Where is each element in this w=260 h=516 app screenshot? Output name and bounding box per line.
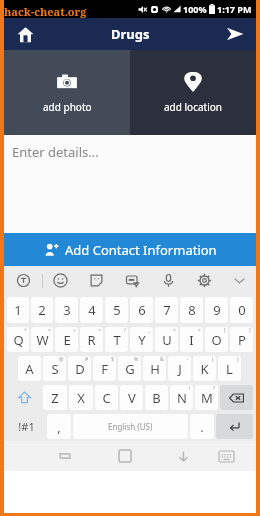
staticText: R — [87, 331, 96, 349]
button[interactable]: Y — [130, 327, 153, 352]
button[interactable]: Collapse — [222, 266, 256, 295]
staticText: Z — [51, 389, 59, 407]
staticText: / — [124, 327, 126, 334]
staticText: Y — [138, 331, 146, 349]
staticText: W — [36, 331, 49, 349]
button[interactable]: Translate — [4, 266, 42, 295]
staticText: P — [238, 331, 246, 349]
button[interactable]: 0 — [230, 297, 253, 323]
button[interactable]: Enter — [216, 414, 253, 439]
staticText: H — [150, 360, 160, 378]
button[interactable]: 5 — [105, 297, 128, 323]
button[interactable]: E — [55, 327, 78, 352]
staticText: T — [113, 331, 121, 349]
staticText: & — [160, 356, 164, 363]
staticText: 3 — [63, 301, 71, 319]
staticText: ] — [249, 327, 251, 334]
staticText: 6 — [138, 301, 146, 319]
button[interactable]: 6 — [130, 297, 153, 323]
staticText: 7 — [163, 301, 171, 319]
button[interactable]: T — [105, 327, 128, 352]
staticText: ? — [213, 385, 216, 392]
button[interactable]: R — [80, 327, 103, 352]
staticText: 9 — [213, 301, 221, 319]
button[interactable]: 2 — [31, 297, 53, 323]
button[interactable]: add photo — [4, 50, 130, 135]
staticText: ( — [212, 356, 214, 363]
button[interactable]: Recents — [46, 441, 84, 471]
staticText: 1 — [14, 301, 22, 319]
button[interactable]: F — [93, 356, 116, 381]
staticText: 2 — [38, 301, 46, 319]
button[interactable]: Q — [7, 327, 29, 352]
staticText: Drugs — [111, 25, 150, 43]
button[interactable]: add location — [130, 50, 256, 135]
button[interactable]: 4 — [80, 297, 103, 323]
button[interactable]: 1 — [7, 297, 29, 323]
staticText: - — [187, 356, 189, 363]
button[interactable]: G — [118, 356, 141, 381]
button[interactable]: U — [155, 327, 178, 352]
button[interactable]: L — [218, 356, 241, 381]
button[interactable]: GIF — [114, 266, 150, 295]
button[interactable]: Voice input — [150, 266, 186, 295]
button[interactable]: 9 — [205, 297, 228, 323]
button[interactable]: Backspace — [220, 385, 253, 410]
button[interactable]: Enter details... — [4, 135, 256, 233]
button[interactable]: D — [68, 356, 91, 381]
button[interactable]: English (US) — [73, 414, 188, 439]
staticText: C — [102, 389, 111, 407]
button[interactable]: W — [31, 327, 53, 352]
button[interactable]: K — [193, 356, 216, 381]
staticText: M — [201, 389, 213, 407]
button[interactable]: Home — [106, 441, 143, 471]
button[interactable]: S — [43, 356, 66, 381]
button[interactable]: 3 — [55, 297, 78, 323]
staticText: + — [24, 327, 27, 334]
button[interactable]: I — [180, 327, 203, 352]
button[interactable]: 7 — [155, 297, 178, 323]
button[interactable]: Shift — [7, 385, 41, 410]
staticText: Add Contact Information — [65, 241, 217, 259]
button[interactable]: N — [170, 385, 193, 410]
button[interactable]: B — [145, 385, 168, 410]
staticText: [ — [224, 327, 226, 334]
staticText: 0 — [238, 301, 246, 319]
button[interactable]: A — [18, 356, 41, 381]
button[interactable]: X — [69, 385, 93, 410]
button[interactable]: P — [230, 327, 253, 352]
button[interactable]: Z — [43, 385, 67, 410]
button[interactable]: Send — [222, 21, 248, 47]
button[interactable]: Home — [12, 21, 38, 47]
staticText: . — [200, 418, 204, 436]
button[interactable]: . — [190, 414, 214, 439]
button[interactable]: Emoji — [43, 266, 78, 295]
staticText: N — [177, 389, 187, 407]
staticText: × — [48, 327, 51, 334]
staticText: # — [85, 356, 89, 363]
staticText: V — [128, 389, 136, 407]
button[interactable]: V — [120, 385, 143, 410]
staticText: ) — [237, 356, 239, 363]
staticText: Enter details... — [12, 143, 99, 161]
button[interactable]: M — [195, 385, 218, 410]
staticText: X — [77, 389, 85, 407]
staticText: 1:17 PM — [217, 3, 252, 15]
staticText: Q — [13, 331, 24, 349]
staticText: 4 — [88, 301, 96, 319]
button[interactable]: C — [95, 385, 118, 410]
button[interactable]: J — [168, 356, 191, 381]
staticText: E — [63, 331, 71, 349]
button[interactable]: Settings — [186, 266, 222, 295]
button[interactable]: Stickers — [78, 266, 114, 295]
button[interactable]: O — [205, 327, 228, 352]
button[interactable]: Keyboard — [208, 441, 245, 471]
button[interactable]: Add Contact Information — [4, 233, 256, 266]
button[interactable]: !#1 — [7, 414, 45, 439]
button[interactable]: Hide keyboard — [165, 441, 202, 471]
button[interactable]: H — [143, 356, 166, 381]
button[interactable]: 8 — [180, 297, 203, 323]
staticText: K — [200, 360, 209, 378]
button[interactable]: , — [47, 414, 71, 439]
staticText: ÷ — [73, 327, 76, 334]
